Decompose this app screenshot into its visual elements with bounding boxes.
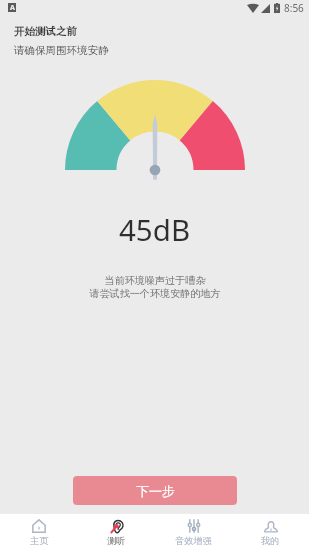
staticText: 当前环境噪声过于嘈杂 请尝试找一个环境安静的地方: [89, 274, 221, 300]
staticText: 下一步: [136, 483, 175, 499]
staticText: 我的: [261, 535, 280, 547]
staticText: 8:56: [284, 1, 304, 15]
staticText: 测听: [107, 535, 126, 547]
button[interactable]: 音效增强: [155, 514, 232, 550]
staticText: 请确保周围环境安静: [14, 44, 109, 57]
button[interactable]: 我的: [232, 514, 309, 550]
staticText: A: [10, 3, 15, 12]
staticText: 主页: [30, 535, 49, 547]
button[interactable]: 下一步: [73, 476, 237, 505]
button[interactable]: 主页: [0, 514, 78, 550]
button[interactable]: 测听: [78, 514, 155, 550]
staticText: 音效增强: [175, 535, 212, 547]
staticText: 开始测试之前: [14, 25, 77, 38]
staticText: 45dB: [119, 209, 191, 249]
